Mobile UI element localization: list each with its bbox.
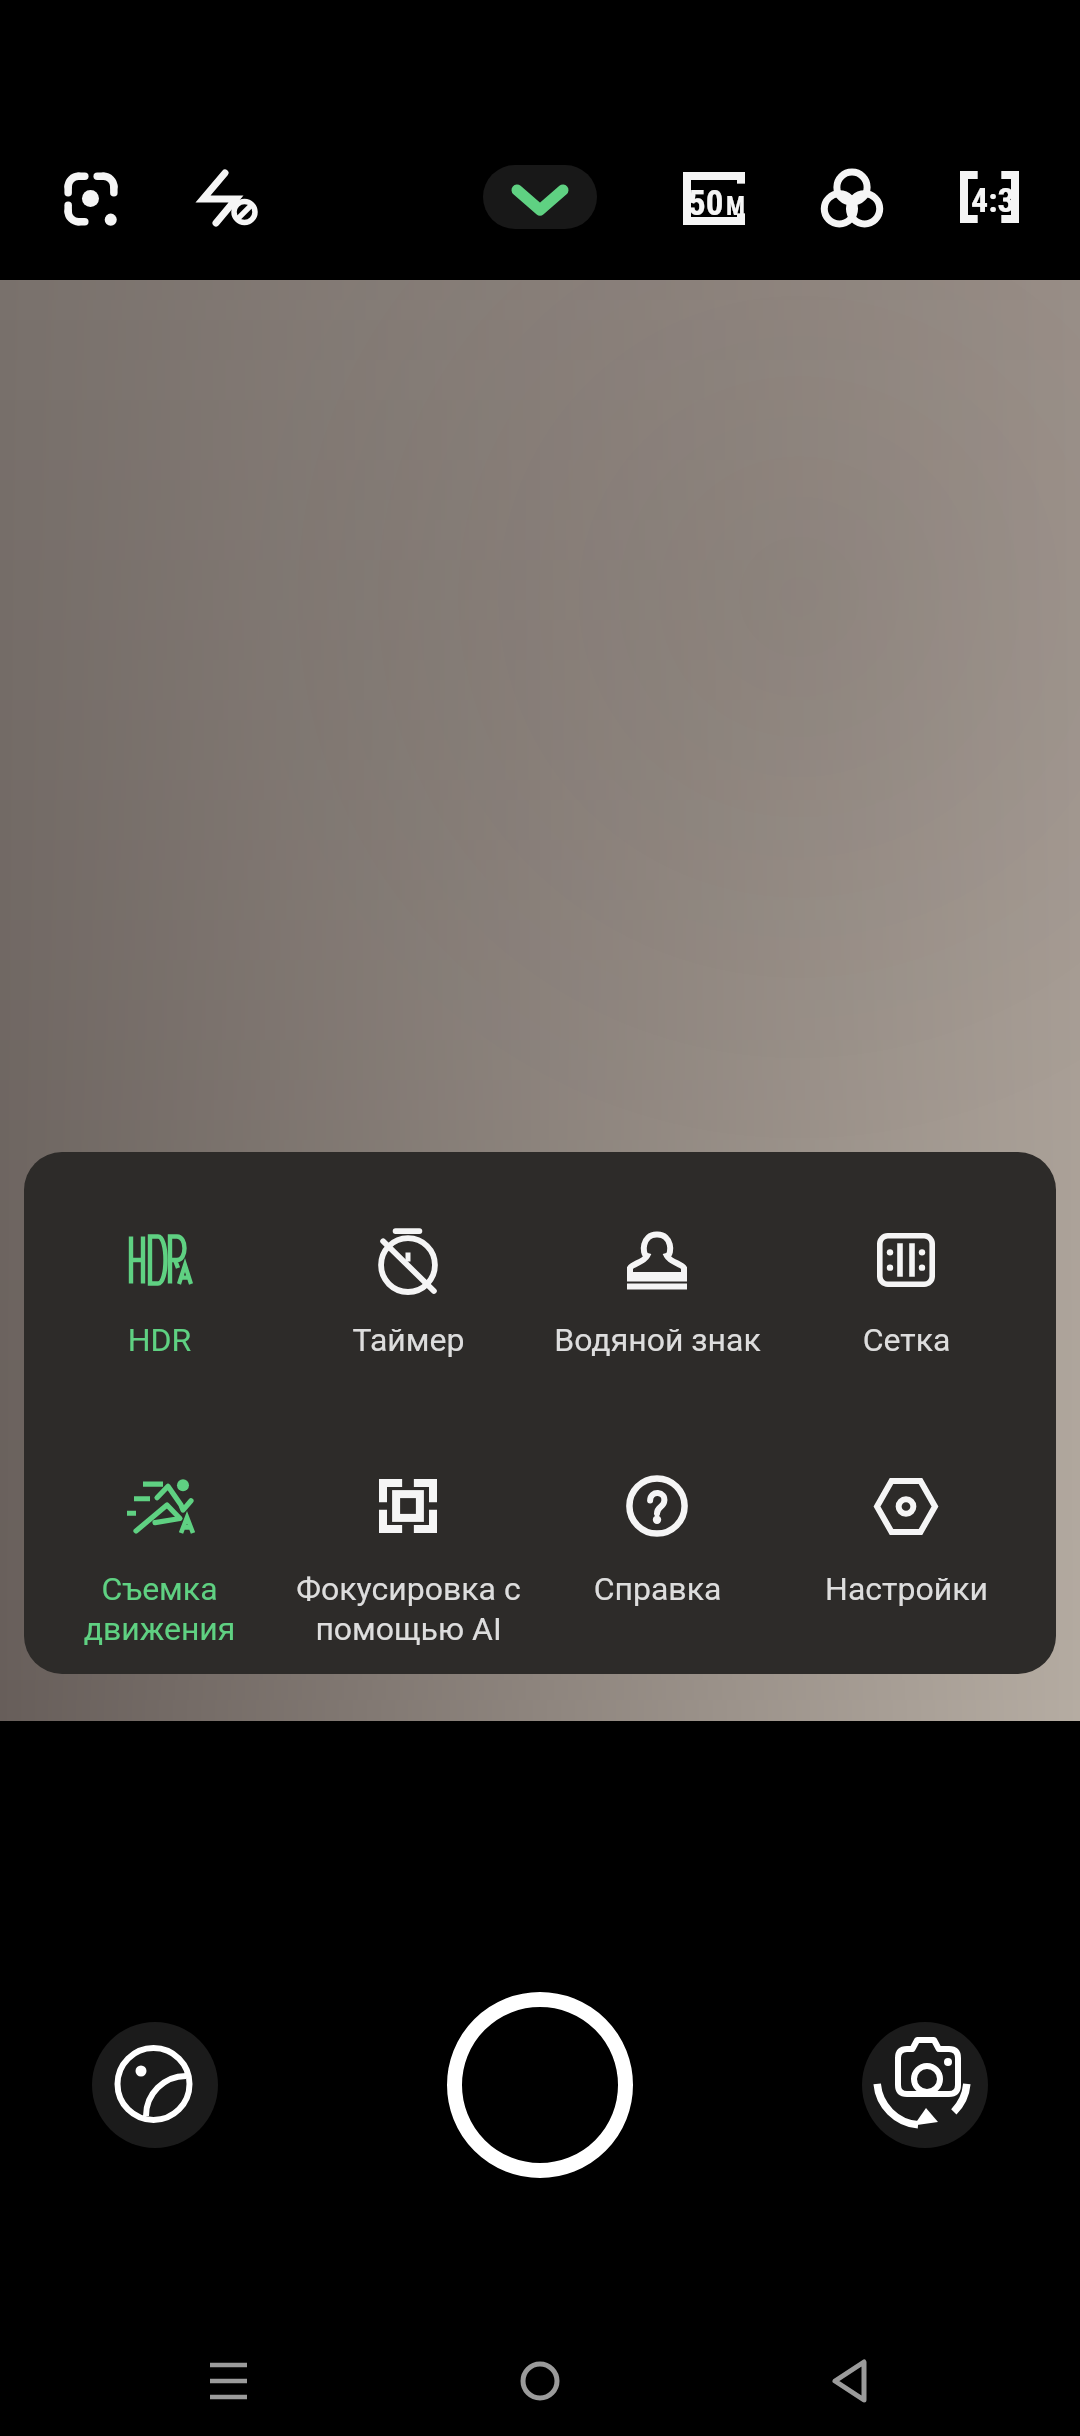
staticText: Справка [533,1570,782,1608]
button[interactable] [284,1212,533,1362]
button[interactable]: 50 megapixels [683,172,745,225]
button[interactable]: Switch camera [862,2022,988,2148]
staticText: 4:3 [971,180,1015,220]
staticText: HDR [35,1321,284,1359]
button[interactable]: Flash off [200,170,256,226]
button[interactable]: Aspect ratio 4 by 3 [960,171,1019,223]
button[interactable] [533,1212,782,1362]
staticText: Таймер [284,1321,533,1359]
button[interactable] [782,1458,1031,1608]
staticText: Настройки [782,1570,1031,1608]
button[interactable]: Gallery [92,2022,218,2148]
button[interactable] [35,1458,284,1608]
button[interactable]: Back [804,2333,900,2429]
staticText: 50 [688,183,724,224]
staticText: Съемка движения [35,1570,284,1647]
button[interactable] [284,1458,533,1608]
button[interactable]: Show more settings [483,165,597,229]
button[interactable] [782,1212,1031,1362]
button[interactable]: Home [492,2333,588,2429]
staticText: Водяной знак [533,1321,782,1359]
button[interactable]: Filters [824,171,880,225]
button[interactable]: Scan [64,172,118,226]
button[interactable] [35,1212,284,1362]
staticText: M [726,192,745,221]
staticText: Сетка [782,1321,1031,1359]
button[interactable] [533,1458,782,1608]
button[interactable]: Take photo [430,1975,650,2195]
staticText: Фокусировка с помощью AI [284,1570,533,1647]
button[interactable]: Recent apps [180,2333,277,2429]
